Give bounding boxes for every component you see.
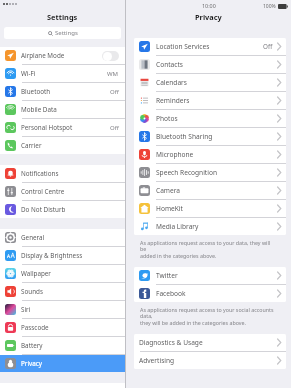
- staticText: Off: [110, 124, 119, 132]
- staticText: As applications request access to your s…: [140, 306, 276, 327]
- staticText: Advertising: [139, 356, 175, 365]
- button[interactable]: Personal Hotspot: [0, 119, 125, 136]
- button[interactable]: Advertising: [134, 352, 286, 369]
- staticText: Speech Recognition: [156, 168, 218, 177]
- button[interactable]: Calendars: [134, 74, 286, 91]
- staticText: 10:00: [202, 2, 216, 9]
- staticText: Wi-Fi: [21, 69, 36, 78]
- button[interactable]: Wi-Fi: [0, 65, 125, 82]
- button[interactable]: Control Centre: [0, 183, 125, 200]
- button[interactable]: Mobile Data: [0, 101, 125, 118]
- button[interactable]: Airplane Mode toggle: [102, 51, 119, 61]
- staticText: Off: [263, 42, 273, 51]
- staticText: Twitter: [156, 271, 178, 280]
- staticText: Battery: [21, 341, 43, 350]
- staticText: Facebook: [156, 289, 186, 298]
- staticText: General: [21, 233, 45, 242]
- staticText: Off: [110, 88, 119, 96]
- button[interactable]: Notifications: [0, 165, 125, 182]
- staticText: Privacy: [195, 12, 222, 22]
- staticText: Notifications: [21, 169, 59, 178]
- staticText: WM: [107, 70, 119, 78]
- staticText: Carrier: [21, 141, 42, 150]
- staticText: Diagnostics & Usage: [139, 338, 203, 347]
- button[interactable]: Settings: [4, 27, 121, 39]
- staticText: Airplane Mode: [21, 51, 65, 60]
- button[interactable]: Photos: [134, 110, 286, 127]
- staticText: Photos: [156, 114, 178, 123]
- button[interactable]: Privacy: [0, 355, 125, 372]
- staticText: Settings: [47, 12, 78, 22]
- staticText: Camera: [156, 186, 181, 195]
- staticText: Bluetooth Sharing: [156, 132, 213, 141]
- staticText: Reminders: [156, 96, 190, 105]
- button[interactable]: Speech Recognition: [134, 164, 286, 181]
- button[interactable]: Camera: [134, 182, 286, 199]
- button[interactable]: Microphone: [134, 146, 286, 163]
- staticText: Do Not Disturb: [21, 205, 66, 214]
- button[interactable]: HomeKit: [134, 200, 286, 217]
- button[interactable]: Wallpaper: [0, 265, 125, 282]
- staticText: 100%: [263, 3, 276, 9]
- staticText: Siri: [21, 305, 31, 314]
- staticText: Mobile Data: [21, 105, 57, 114]
- button[interactable]: Passcode: [0, 319, 125, 336]
- button[interactable]: Location Services: [134, 38, 286, 55]
- button[interactable]: Do Not Disturb: [0, 201, 125, 218]
- staticText: Sounds: [21, 287, 43, 296]
- button[interactable]: Contacts: [134, 56, 286, 73]
- button[interactable]: Diagnostics & Usage: [134, 334, 286, 351]
- button[interactable]: Reminders: [134, 92, 286, 109]
- button[interactable]: Bluetooth: [0, 83, 125, 100]
- button[interactable]: Bluetooth Sharing: [134, 128, 286, 145]
- staticText: Control Centre: [21, 187, 65, 196]
- button[interactable]: Media Library: [134, 218, 286, 235]
- button[interactable]: General: [0, 229, 125, 246]
- staticText: Personal Hotspot: [21, 123, 73, 132]
- button[interactable]: Display & Brightness: [0, 247, 125, 264]
- button[interactable]: Sounds: [0, 283, 125, 300]
- staticText: Settings: [55, 29, 78, 37]
- button[interactable]: Airplane Mode: [0, 47, 125, 64]
- staticText: Media Library: [156, 222, 199, 231]
- staticText: HomeKit: [156, 204, 183, 213]
- staticText: Wallpaper: [21, 269, 51, 278]
- button[interactable]: Siri: [0, 301, 125, 318]
- staticText: Contacts: [156, 60, 184, 69]
- staticText: Location Services: [156, 42, 210, 51]
- staticText: Display & Brightness: [21, 251, 83, 260]
- staticText: Calendars: [156, 78, 187, 87]
- staticText: Privacy: [21, 359, 43, 368]
- staticText: Microphone: [156, 150, 194, 159]
- staticText: Passcode: [21, 323, 49, 332]
- staticText: Bluetooth: [21, 87, 51, 96]
- button[interactable]: Twitter: [134, 267, 286, 284]
- staticText: As applications request access to your d…: [140, 239, 276, 260]
- button[interactable]: Carrier: [0, 137, 125, 154]
- button[interactable]: Facebook: [134, 285, 286, 302]
- button[interactable]: Battery: [0, 337, 125, 354]
